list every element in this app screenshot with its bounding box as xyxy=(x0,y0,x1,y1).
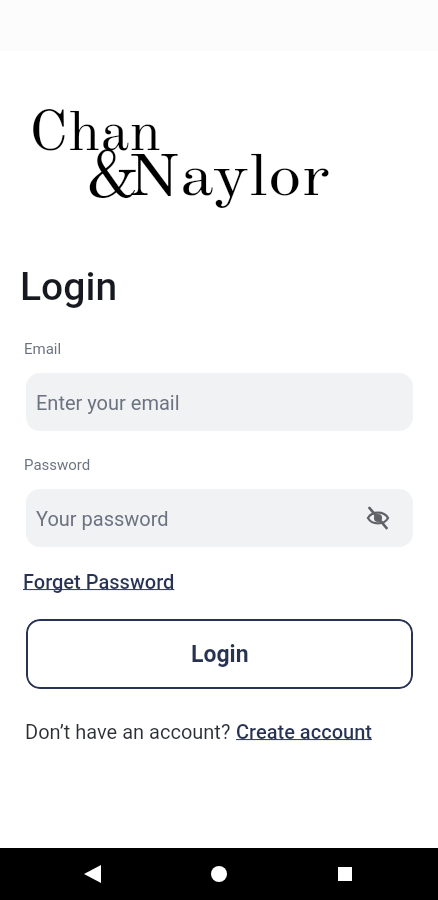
staticText: Email xyxy=(24,340,62,358)
button[interactable] xyxy=(211,866,227,882)
staticText: Login xyxy=(191,641,249,668)
button[interactable]: Enter your email xyxy=(26,373,413,431)
button[interactable]: Your password xyxy=(26,489,413,547)
staticText: & xyxy=(86,145,140,213)
button[interactable]: Create account xyxy=(236,720,372,743)
button[interactable]: Forget Password xyxy=(23,570,175,593)
staticText: Login xyxy=(20,264,118,310)
staticText: Enter your email xyxy=(36,391,180,414)
staticText: Don’t have an account? xyxy=(25,720,236,743)
staticText: Your password xyxy=(36,507,169,530)
staticText: Password xyxy=(24,456,91,474)
staticText: Chan xyxy=(29,107,161,163)
button[interactable] xyxy=(84,865,101,883)
button[interactable]: Login xyxy=(26,619,413,689)
staticText: Naylor xyxy=(127,151,331,209)
